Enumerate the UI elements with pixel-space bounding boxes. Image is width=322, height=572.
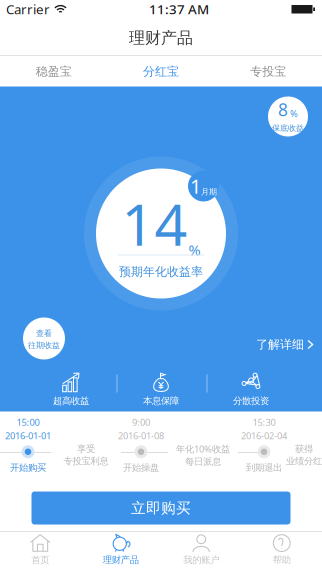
staticText: 8	[278, 98, 288, 121]
staticText: 到期退出	[246, 462, 282, 473]
staticText: %	[290, 107, 298, 120]
staticText: 2016-02-04	[241, 429, 287, 442]
staticText: 了解详细	[256, 337, 304, 352]
staticText: 月期	[201, 187, 217, 197]
button[interactable]: 分散投资	[203, 369, 299, 409]
staticText: 业绩分红	[286, 455, 322, 467]
staticText: 稳盈宝	[36, 64, 72, 79]
staticText: 开始操盘	[123, 462, 159, 473]
staticText: 15:30	[252, 416, 275, 428]
staticText: 15:00	[16, 416, 39, 428]
button[interactable]: 帮助	[241, 532, 322, 571]
button[interactable]: 稳盈宝	[0, 56, 107, 87]
staticText: 理财产品	[103, 554, 139, 566]
staticText: 开始购买	[10, 462, 46, 473]
staticText: 理财产品	[129, 28, 193, 48]
staticText: 分散投资	[233, 395, 269, 407]
staticText: 1	[190, 173, 201, 199]
button[interactable]: 立即购买	[31, 491, 290, 524]
staticText: 11:37 AM	[149, 0, 209, 18]
staticText: %	[188, 240, 200, 260]
staticText: 帮助	[273, 554, 291, 566]
button[interactable]: 查看往期收益	[23, 317, 65, 359]
staticText: 查看	[36, 328, 52, 338]
button[interactable]: 保底收益 8%	[268, 96, 308, 136]
button[interactable]: 首页	[0, 532, 80, 571]
button[interactable]: 期限1月期	[188, 170, 219, 201]
button[interactable]: 分红宝	[107, 56, 215, 87]
staticText: 我的账户	[183, 554, 219, 566]
staticText: 专投宝	[250, 64, 286, 79]
button[interactable]: 了解详细	[256, 335, 314, 353]
staticText: 分红宝	[143, 64, 179, 79]
button[interactable]: 本息保障	[113, 369, 209, 409]
button[interactable]: 专投宝	[215, 56, 322, 87]
staticText: 享受	[77, 443, 95, 454]
staticText: 专投宝利息	[63, 455, 108, 467]
button[interactable]: 理财产品	[80, 532, 161, 571]
button[interactable]: 我的账户	[161, 532, 241, 571]
staticText: 年化10%收益	[176, 443, 230, 455]
staticText: 9:00	[132, 416, 150, 428]
staticText: 每日派息	[185, 456, 221, 467]
staticText: 2016-01-01	[5, 429, 51, 442]
staticText: Carrier	[6, 0, 50, 18]
staticText: 超高收益	[53, 395, 89, 407]
staticText: 首页	[31, 554, 49, 566]
button[interactable]: 超高收益	[23, 369, 119, 409]
staticText: 2016-01-08	[118, 429, 164, 442]
staticText: 往期收益	[28, 340, 60, 350]
staticText: 14	[121, 185, 187, 261]
staticText: 立即购买	[131, 499, 191, 517]
staticText: 保底收益	[272, 123, 304, 133]
staticText: 本息保障	[143, 395, 179, 407]
staticText: 获得	[295, 443, 313, 454]
staticText: 预期年化收益率	[119, 264, 203, 279]
